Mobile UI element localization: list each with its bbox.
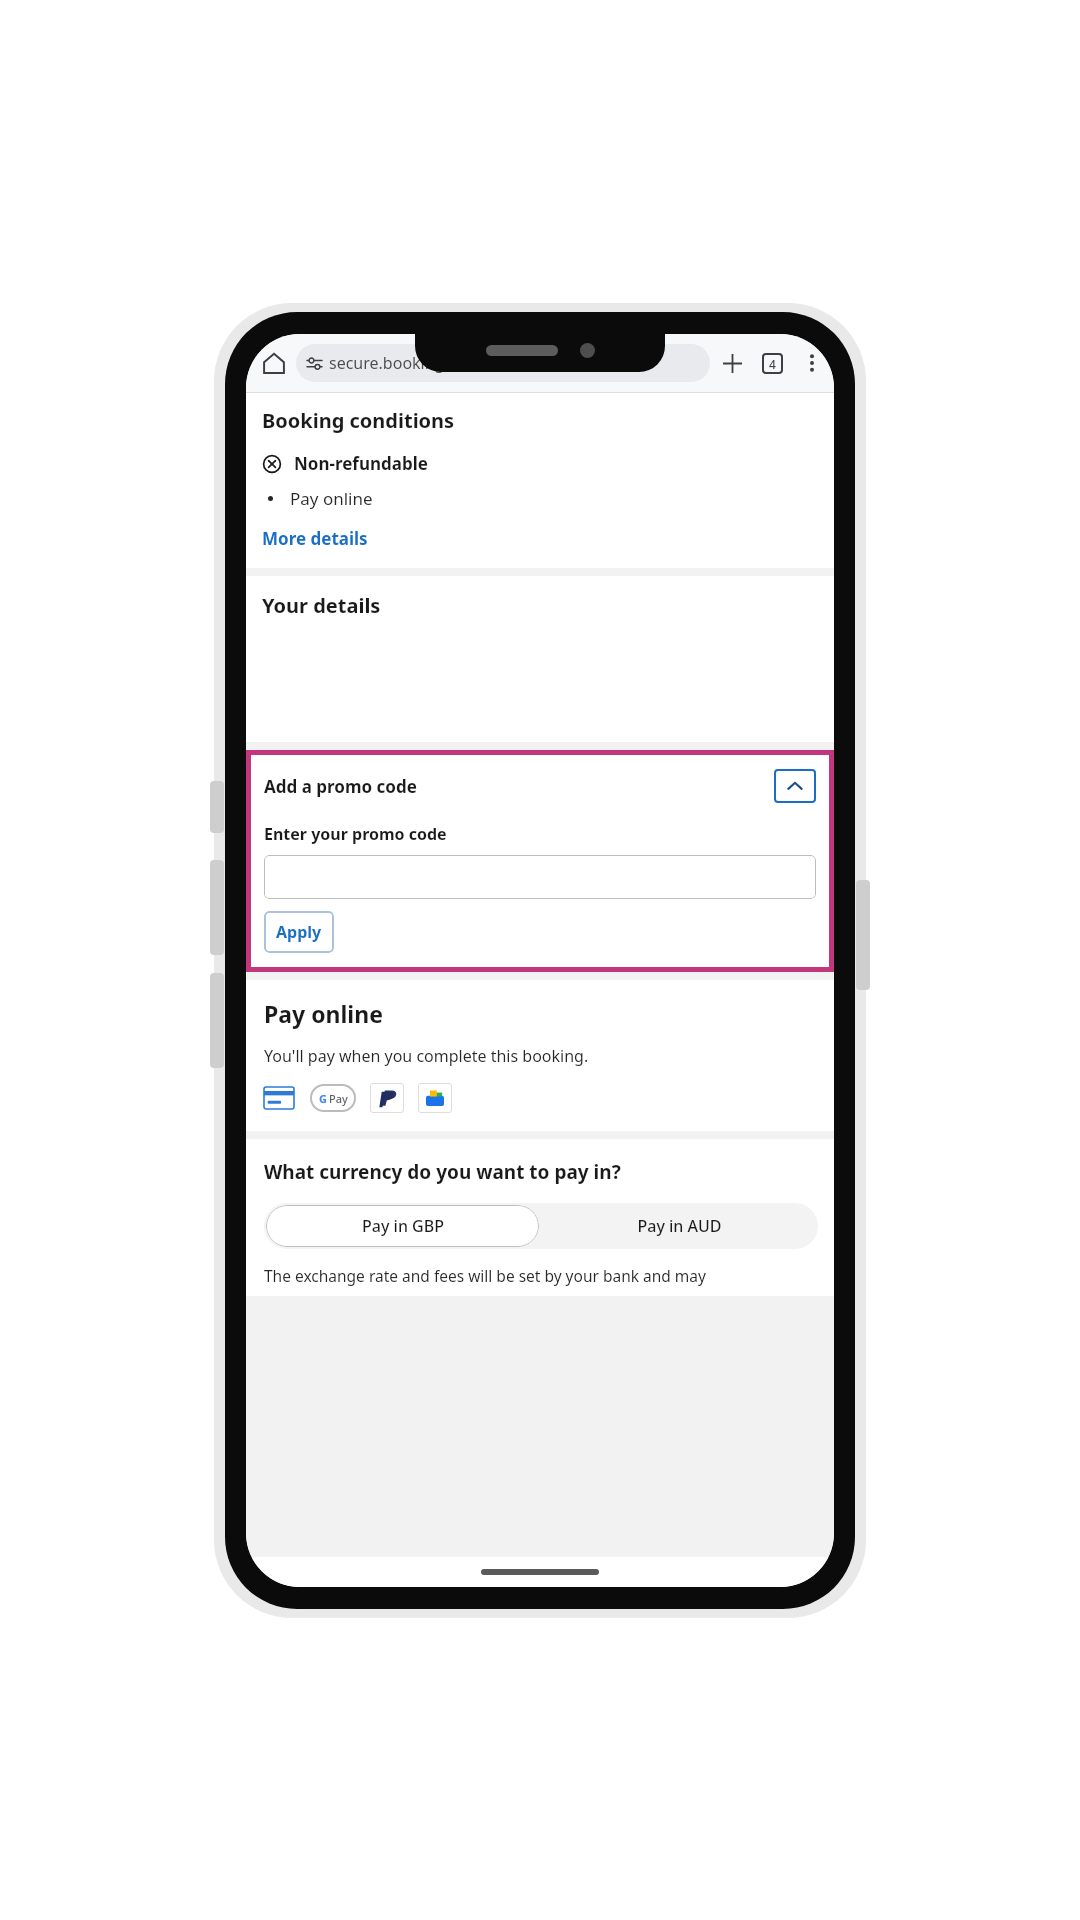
staticText: Pay online [264,998,383,1029]
button[interactable]: secure.booking.com/boo [296,344,710,382]
button[interactable]: More details [262,527,368,550]
staticText: Pay [329,1091,348,1106]
staticText: The exchange rate and fees will be set b… [264,1265,706,1286]
button[interactable]: Home [252,341,296,385]
staticText: Apply [276,921,322,943]
button[interactable]: Pay in AUD [541,1203,818,1249]
staticText: Pay in GBP [362,1215,444,1237]
staticText: secure.booking.com/boo [329,352,517,374]
staticText: More details [262,527,368,550]
button[interactable]: New tab [712,343,752,383]
staticText: Add a promo code [264,775,774,798]
staticText: You'll pay when you complete this bookin… [264,1045,589,1067]
button[interactable]: Collapse promo code [774,769,816,803]
staticText: Booking conditions [262,407,455,434]
button[interactable]: Pay in GBP [266,1205,539,1247]
staticText: Non-refundable [294,452,428,475]
button[interactable]: More options [792,343,832,383]
button[interactable]: Tabs: 4 [752,343,792,383]
staticText: G [319,1091,327,1106]
staticText: 4 [769,356,776,372]
staticText: Enter your promo code [264,823,447,845]
staticText: Pay in AUD [637,1215,722,1237]
staticText: Pay online [290,487,373,510]
staticText: What currency do you want to pay in? [264,1159,621,1185]
staticText: Your details [262,592,381,619]
button[interactable] [264,855,816,899]
button[interactable]: Apply [264,911,334,953]
